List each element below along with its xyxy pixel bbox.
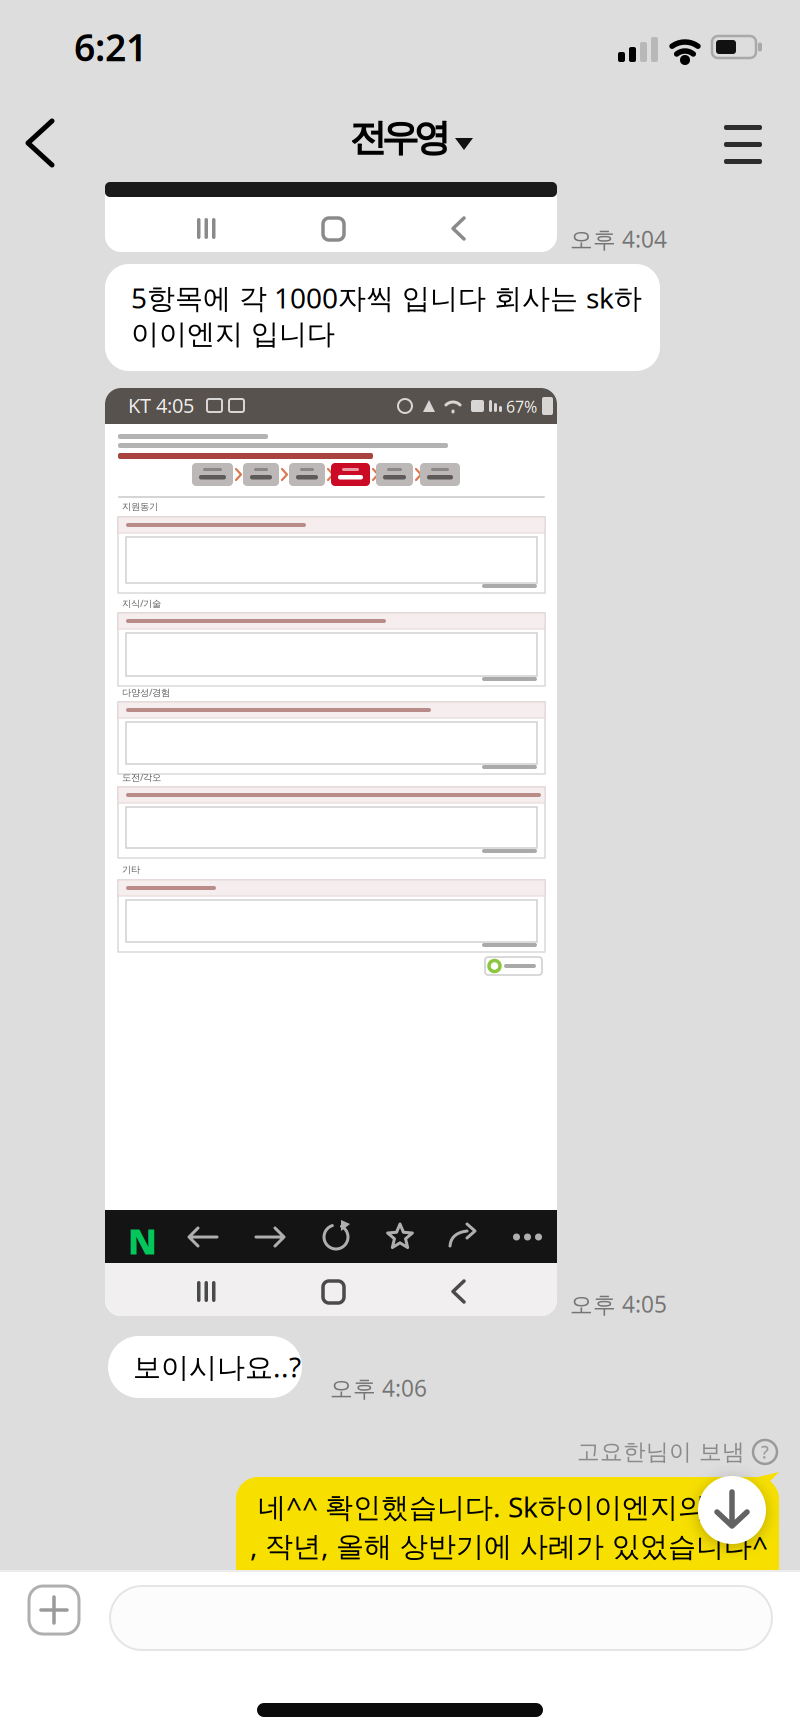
staticText: 오후 4:05 bbox=[570, 1289, 667, 1319]
button[interactable]: Back bbox=[14, 108, 66, 178]
button[interactable]: 전우영 bbox=[0, 115, 800, 161]
button[interactable]: View image bbox=[105, 182, 557, 252]
button[interactable]: Attach bbox=[29, 1586, 79, 1634]
staticText: 다양성/경험 bbox=[122, 686, 170, 698]
staticText: 6:21 bbox=[74, 22, 147, 72]
button[interactable]: Message input bbox=[110, 1586, 772, 1650]
button[interactable]: Info bbox=[753, 1440, 777, 1464]
button[interactable]: Menu bbox=[724, 125, 762, 164]
staticText: 이이엔지 입니다 bbox=[131, 317, 335, 351]
staticText: N bbox=[128, 1218, 157, 1264]
staticText: 지원동기 bbox=[122, 501, 158, 512]
staticText: 지식/기술 bbox=[122, 597, 161, 609]
staticText: 고요한님이 보냄 bbox=[577, 1438, 745, 1466]
staticText: 전우영 bbox=[349, 115, 450, 161]
button[interactable]: KT 4:05 bbox=[105, 388, 557, 1316]
staticText: 67% bbox=[506, 396, 537, 417]
staticText: 보이시나요..? bbox=[133, 1348, 301, 1385]
button[interactable]: Scroll to bottom bbox=[698, 1476, 766, 1544]
staticText: 5항목에 각 1000자씩 입니다 회사는 sk하 bbox=[131, 279, 642, 316]
staticText: 기타 bbox=[122, 864, 140, 875]
staticText: , 작년, 올해 상반기에 사례가 있었습니다^ bbox=[250, 1527, 768, 1564]
staticText: ? bbox=[761, 1440, 769, 1463]
staticText: 오후 4:06 bbox=[330, 1373, 427, 1403]
staticText: KT 4:05 bbox=[128, 392, 194, 419]
staticText: 오후 4:04 bbox=[570, 224, 667, 254]
staticText: 도전/각오 bbox=[122, 771, 161, 783]
staticText: 네^^ 확인했습니다. Sk하이이엔지의 bbox=[258, 1488, 706, 1525]
